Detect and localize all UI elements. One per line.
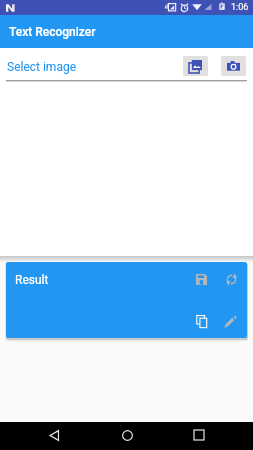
staticText: 1:06 [231,2,249,13]
staticText: Select image [7,60,77,74]
staticText: Result [15,273,49,287]
button[interactable]: Recent apps [187,423,211,447]
button[interactable]: Refresh [219,267,243,291]
button[interactable]: Home [115,423,139,447]
button[interactable]: Back [42,423,66,447]
button[interactable]: Result [6,262,247,338]
button[interactable]: Take photo with camera [221,56,246,76]
button[interactable]: Save [189,267,213,291]
button[interactable]: Edit [218,309,242,333]
button[interactable]: Copy [190,309,214,333]
button[interactable]: Choose image from gallery [183,56,208,76]
staticText: Text Recognizer [9,25,96,39]
